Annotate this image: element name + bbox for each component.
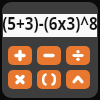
- button[interactable]: [37, 46, 61, 65]
- staticText: (5+3)-(6x3)^8: [2, 11, 98, 34]
- button[interactable]: [37, 70, 61, 89]
- button[interactable]: [8, 46, 32, 65]
- button[interactable]: (5+3)-(6x3)^8: [3, 14, 97, 37]
- button[interactable]: [66, 46, 90, 65]
- button[interactable]: [66, 70, 90, 89]
- button[interactable]: [8, 70, 32, 89]
